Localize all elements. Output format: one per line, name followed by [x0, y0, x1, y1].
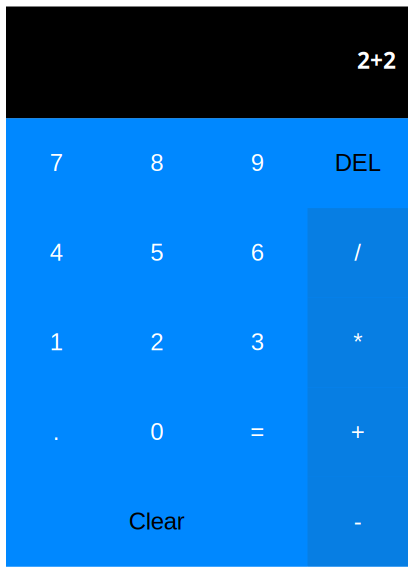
staticText: 2	[150, 329, 163, 355]
button[interactable]: =	[207, 387, 307, 477]
button[interactable]: 6	[207, 208, 307, 298]
staticText: 7	[50, 149, 63, 176]
button[interactable]: 1	[6, 298, 106, 387]
staticText: DEL	[335, 149, 381, 176]
staticText: *	[353, 329, 362, 355]
staticText: 6	[251, 239, 264, 266]
staticText: +	[351, 418, 365, 445]
button[interactable]: 7	[6, 118, 106, 208]
staticText: 9	[251, 149, 264, 176]
button[interactable]: 3	[207, 298, 307, 387]
staticText: 2+2	[357, 45, 396, 75]
button[interactable]: -	[307, 477, 408, 566]
button[interactable]: /	[307, 208, 408, 298]
button[interactable]: 8	[106, 118, 207, 208]
staticText: 1	[50, 329, 63, 355]
staticText: 4	[50, 239, 63, 266]
staticText: =	[250, 418, 264, 445]
staticText: 5	[150, 239, 163, 266]
staticText: .	[53, 418, 60, 445]
button[interactable]: *	[307, 298, 408, 387]
button[interactable]: 9	[207, 118, 307, 208]
staticText: 0	[150, 418, 163, 445]
button[interactable]: 5	[106, 208, 207, 298]
staticText: -	[354, 508, 362, 535]
button[interactable]: DEL	[307, 118, 408, 208]
staticText: 8	[150, 149, 163, 176]
staticText: Clear	[129, 508, 185, 535]
staticText: 3	[251, 329, 264, 355]
button[interactable]: 2	[106, 298, 207, 387]
button[interactable]: .	[6, 387, 106, 477]
button[interactable]: 4	[6, 208, 106, 298]
button[interactable]: +	[307, 387, 408, 477]
button[interactable]: Clear	[6, 477, 307, 566]
staticText: /	[354, 239, 361, 266]
button[interactable]: 0	[106, 387, 207, 477]
